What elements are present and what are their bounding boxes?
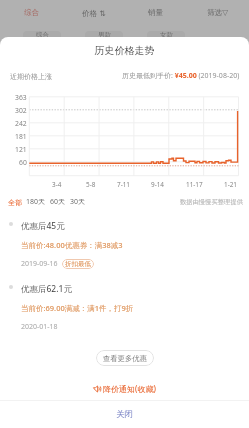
button[interactable]: 综合: [23, 31, 61, 43]
staticText: 综合: [24, 8, 40, 18]
staticText: 当前价:48.00优惠券：满38减3: [21, 240, 123, 250]
staticText: 60天: [50, 197, 66, 207]
staticText: 筛选▽: [207, 8, 229, 18]
staticText: 综合: [36, 31, 49, 39]
staticText: 242: [15, 119, 27, 128]
staticText: 全部: [8, 198, 22, 207]
staticText: 降价通知(收藏): [103, 383, 156, 394]
button[interactable]: 全部: [8, 198, 22, 207]
staticText: 121: [15, 145, 27, 154]
button[interactable]: 180天: [26, 197, 46, 207]
button[interactable]: 销量: [125, 0, 187, 25]
staticText: 5-8: [86, 180, 96, 189]
staticText: 当前价:69.00满减：满1件，打9折: [21, 303, 134, 313]
button[interactable]: 男款: [85, 31, 123, 43]
button[interactable]: 价格 ⇅: [63, 0, 125, 25]
staticText: 数据由慢慢买整理提供: [180, 198, 243, 206]
staticText: 历史价格走势: [0, 44, 249, 57]
button[interactable]: 综合: [0, 0, 63, 25]
staticText: 优惠后62.1元: [21, 283, 72, 295]
button[interactable]: 30天: [70, 197, 86, 207]
staticText: 查看更多优惠: [103, 354, 147, 363]
staticText: 7-11: [117, 180, 131, 189]
staticText: 2020-01-18: [21, 322, 58, 332]
staticText: 60: [19, 158, 27, 167]
staticText: 关闭: [116, 409, 133, 420]
staticText: 优惠后45元: [21, 220, 65, 232]
button[interactable]: 关闭: [0, 401, 249, 428]
staticText: 181: [15, 132, 27, 141]
staticText: 3-4: [52, 180, 62, 189]
staticText: 价格 ⇅: [82, 8, 106, 18]
staticText: 历史最低到手价: ¥45.00 (2019-08-20): [122, 71, 240, 81]
button[interactable]: 优惠后45元: [9, 220, 240, 269]
staticText: 11-17: [186, 180, 203, 189]
staticText: 女款: [160, 31, 173, 39]
other: Price drop alert: [93, 385, 101, 393]
staticText: 折扣最低: [65, 260, 91, 268]
staticText: 销量: [148, 8, 164, 18]
button[interactable]: 60天: [50, 197, 66, 207]
button[interactable]: 女款: [147, 31, 185, 43]
button[interactable]: 优惠后62.1元: [9, 283, 240, 332]
staticText: 男款: [98, 31, 111, 39]
staticText: 302: [15, 106, 27, 115]
staticText: 180天: [26, 197, 46, 207]
staticText: 363: [15, 93, 27, 102]
staticText: 近期价格上涨: [10, 72, 52, 81]
button[interactable]: 查看更多优惠: [96, 350, 154, 366]
staticText: 1-21: [224, 180, 238, 189]
button[interactable]: 筛选▽: [187, 0, 249, 25]
staticText: 9-14: [151, 180, 165, 189]
staticText: 30天: [70, 197, 86, 207]
staticText: 2019-09-16: [21, 259, 58, 269]
button[interactable]: Price drop alert: [90, 382, 159, 395]
